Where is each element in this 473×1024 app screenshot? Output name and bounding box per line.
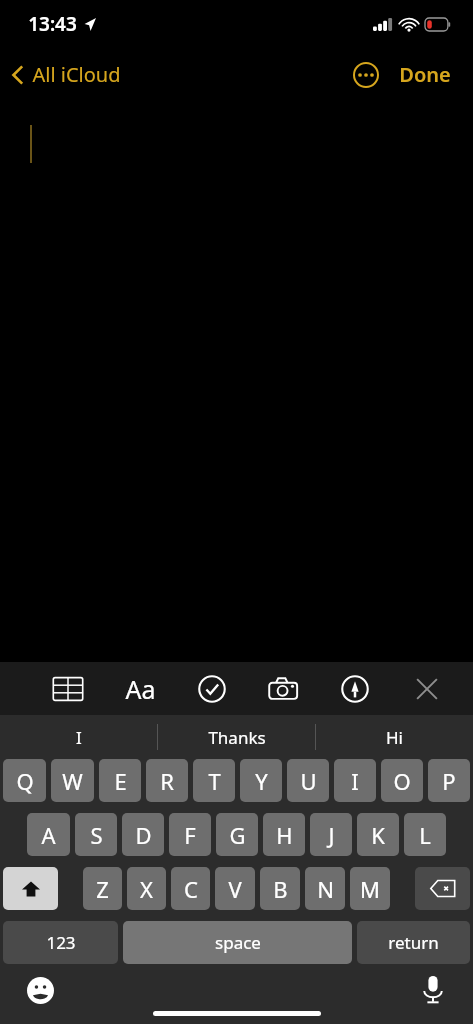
button[interactable]: 123 [3,921,118,964]
button[interactable]: A [27,813,70,856]
button[interactable]: Close keyboard [403,665,451,713]
button[interactable]: Checklist [188,665,236,713]
staticText: T [208,766,221,796]
staticText: space [215,931,261,954]
staticText: I [351,766,359,796]
button[interactable]: R [146,759,188,802]
staticText: N [317,874,334,904]
button[interactable]: G [216,813,258,856]
staticText: K [371,820,385,850]
staticText: 13:43 [28,11,77,37]
staticText: 123 [46,931,76,954]
staticText: Hi [386,726,403,749]
button[interactable]: V [215,867,255,910]
staticText: U [300,766,317,796]
button[interactable]: Text format [116,665,164,713]
staticText: Q [16,766,34,796]
staticText: Aa [125,672,156,706]
staticText: I [76,726,82,749]
button[interactable]: D [122,813,164,856]
button[interactable]: return [357,921,470,964]
button[interactable]: L [404,813,446,856]
staticText: H [276,820,293,850]
button[interactable]: Shift [3,867,58,910]
button[interactable]: X [127,867,166,910]
button[interactable]: Dictation [411,968,455,1012]
button[interactable]: Markup [331,665,379,713]
staticText: B [273,874,288,904]
staticText: S [90,820,103,850]
staticText: F [184,820,196,850]
staticText: E [114,766,127,796]
button[interactable]: H [263,813,305,856]
staticText: All iCloud [32,61,121,88]
button[interactable]: Insert table [44,665,92,713]
button[interactable]: Y [240,759,282,802]
staticText: D [135,820,152,850]
button[interactable]: Thanks [158,715,315,759]
button[interactable]: More options [349,58,383,92]
button[interactable]: B [260,867,300,910]
staticText: J [328,820,335,850]
button[interactable]: All iCloud [0,55,131,94]
button[interactable]: C [171,867,210,910]
staticText: O [393,766,411,796]
button[interactable]: S [75,813,117,856]
button[interactable]: N [305,867,345,910]
button[interactable]: O [381,759,423,802]
button[interactable]: E [99,759,141,802]
staticText: W [62,766,83,796]
button[interactable]: F [169,813,211,856]
staticText: R [160,766,174,796]
button[interactable]: K [357,813,399,856]
staticText: P [442,766,456,796]
button[interactable]: Camera [259,665,307,713]
staticText: A [41,820,56,850]
staticText: C [184,874,198,904]
button[interactable]: I [334,759,376,802]
button[interactable]: Q [3,759,46,802]
button[interactable]: space [123,921,352,964]
button[interactable]: P [428,759,470,802]
staticText: M [360,874,380,904]
button[interactable]: Z [83,867,122,910]
staticText: G [229,820,246,850]
button[interactable]: Emoji [18,968,62,1012]
button[interactable]: Done [395,55,455,94]
staticText: Thanks [208,726,266,749]
button[interactable]: M [350,867,390,910]
staticText: V [228,874,242,904]
staticText: Done [399,61,451,88]
button[interactable]: I [0,715,157,759]
button[interactable]: Hi [316,715,473,759]
button[interactable]: J [310,813,352,856]
staticText: return [388,931,439,954]
button[interactable]: U [287,759,329,802]
staticText: Y [255,766,268,796]
staticText: X [140,874,153,904]
button[interactable]: T [193,759,235,802]
staticText: L [419,820,431,850]
staticText: Z [96,874,109,904]
button[interactable]: Backspace [415,867,470,910]
button[interactable]: W [51,759,94,802]
